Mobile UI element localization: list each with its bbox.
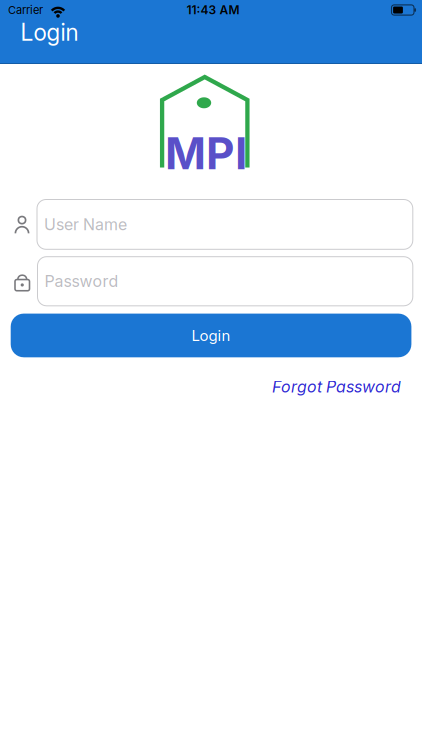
staticText: MPI (165, 127, 247, 179)
button[interactable]: Login (11, 314, 411, 357)
staticText: Password (44, 272, 118, 291)
button[interactable]: Forgot Password (272, 377, 401, 396)
staticText: User Name (44, 215, 127, 234)
button[interactable]: User Name (37, 199, 413, 249)
staticText: 11:43 AM (186, 3, 239, 17)
staticText: Login (191, 327, 230, 344)
staticText: Forgot Password (272, 377, 401, 396)
staticText: Login (20, 19, 78, 46)
button[interactable]: Password (37, 257, 413, 306)
staticText: Carrier (8, 3, 43, 16)
